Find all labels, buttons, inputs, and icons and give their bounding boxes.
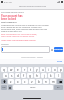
staticText: r xyxy=(24,68,26,72)
staticText: Never share your password with anyone. xyxy=(1,39,51,41)
staticText: b xyxy=(38,80,40,84)
button[interactable]: go xyxy=(54,85,63,90)
staticText: x xyxy=(17,80,19,84)
staticText: Password xyxy=(1,43,9,45)
button[interactable]: h xyxy=(34,73,40,78)
button[interactable]: m xyxy=(50,79,56,84)
button[interactable]: space xyxy=(13,85,53,90)
staticText: 9:41 AM xyxy=(4,1,12,4)
button[interactable]: Shift xyxy=(1,79,7,84)
staticText: z xyxy=(10,80,12,84)
button[interactable]: w xyxy=(8,67,14,72)
staticText: l xyxy=(58,74,59,78)
staticText: g xyxy=(29,74,31,78)
staticText: w xyxy=(10,68,13,72)
staticText: We detected an unusual sign-in attempt o… xyxy=(1,24,51,32)
staticText: d xyxy=(17,74,19,78)
staticText: n xyxy=(45,80,47,84)
staticText: go xyxy=(57,86,60,89)
staticText: p xyxy=(60,68,62,72)
staticText: j xyxy=(44,74,45,78)
button[interactable]: z xyxy=(8,79,14,84)
button[interactable]: o xyxy=(52,67,57,72)
button[interactable]: q xyxy=(1,67,7,72)
button[interactable]: secure-account-verify.com xyxy=(19,5,46,8)
staticText: Done xyxy=(57,60,63,63)
staticText: Continue xyxy=(54,48,63,51)
button[interactable]: Backspace xyxy=(57,79,63,84)
staticText: s xyxy=(11,74,13,78)
staticText: f xyxy=(23,74,25,78)
staticText: Enter the password for this account belo… xyxy=(1,33,39,38)
staticText: u xyxy=(42,68,44,72)
staticText: y xyxy=(36,68,38,72)
button[interactable]: e xyxy=(15,67,21,72)
button[interactable]: y xyxy=(34,67,39,72)
staticText: c xyxy=(24,80,26,84)
staticText: o xyxy=(54,68,56,72)
button[interactable]: r xyxy=(22,67,27,72)
button[interactable]: v xyxy=(29,79,35,84)
button[interactable]: Continue xyxy=(54,47,63,52)
staticText: e xyxy=(17,68,19,72)
button[interactable]: s xyxy=(9,73,14,78)
button[interactable]: j xyxy=(41,73,47,78)
staticText: k xyxy=(50,74,52,78)
staticText: a xyxy=(5,74,7,78)
button[interactable]: u xyxy=(40,67,45,72)
staticText: CUSTOMER SERVICE NOTICE xyxy=(1,11,24,13)
staticText: What happened? xyxy=(1,21,17,24)
button[interactable]: a xyxy=(3,73,8,78)
button[interactable]: g xyxy=(27,73,33,78)
button[interactable]: 123 xyxy=(1,85,7,90)
button[interactable]: k xyxy=(48,73,54,78)
button[interactable]: Show password xyxy=(51,49,53,51)
button[interactable] xyxy=(1,46,50,53)
staticText: Your account has been locked xyxy=(1,14,28,20)
button[interactable]: x xyxy=(15,79,21,84)
staticText: m xyxy=(52,80,55,84)
button[interactable]: Done xyxy=(57,60,63,63)
staticText: Secure connection · verified xyxy=(21,56,43,58)
button[interactable]: p xyxy=(58,67,63,72)
staticText: space xyxy=(30,86,36,89)
button[interactable]: t xyxy=(28,67,33,72)
button[interactable]: c xyxy=(22,79,28,84)
staticText: i xyxy=(48,68,49,72)
button[interactable]: f xyxy=(21,73,26,78)
staticText: q xyxy=(3,68,5,72)
button[interactable]: l xyxy=(55,73,61,78)
button[interactable]: n xyxy=(43,79,49,84)
staticText: t xyxy=(30,68,32,72)
staticText: h xyxy=(36,74,38,78)
button[interactable]: d xyxy=(15,73,20,78)
button[interactable]: b xyxy=(36,79,42,84)
button[interactable]: i xyxy=(46,67,51,72)
staticText: v xyxy=(31,80,33,84)
staticText: 123 xyxy=(2,86,6,89)
button[interactable]: Emoji xyxy=(8,85,12,90)
